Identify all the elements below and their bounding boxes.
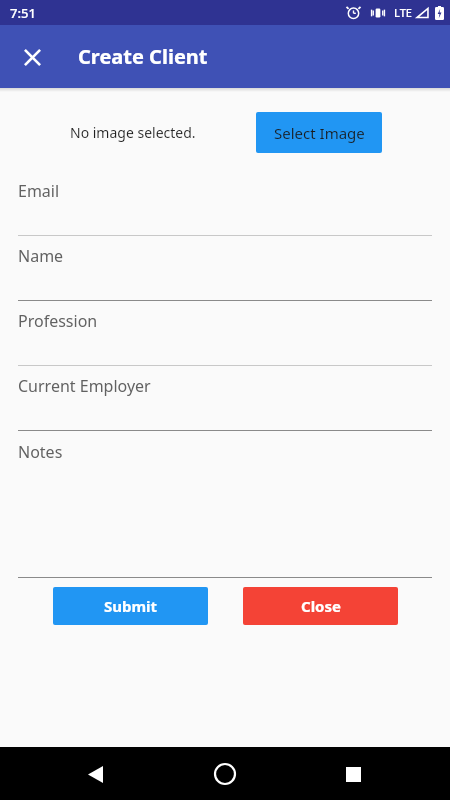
staticText: Name bbox=[18, 245, 64, 267]
staticText: Notes bbox=[18, 441, 63, 463]
button[interactable]: Back bbox=[71, 750, 119, 798]
button[interactable]: Current Employer bbox=[0, 366, 450, 431]
staticText: Select Image bbox=[274, 123, 365, 143]
button[interactable]: Close bbox=[243, 587, 398, 625]
staticText: LTE bbox=[394, 5, 412, 20]
staticText: Close bbox=[301, 596, 341, 616]
staticText: Profession bbox=[18, 310, 98, 332]
button[interactable]: Recent apps bbox=[329, 750, 377, 798]
staticText: 7:51 bbox=[10, 4, 36, 22]
staticText: No image selected. bbox=[70, 123, 196, 142]
button[interactable]: Select Image bbox=[256, 112, 382, 153]
button[interactable]: Submit bbox=[53, 587, 208, 625]
button[interactable]: Profession bbox=[0, 301, 450, 366]
button[interactable]: Close bbox=[12, 37, 52, 77]
button[interactable]: Email bbox=[0, 171, 450, 236]
staticText: Current Employer bbox=[18, 375, 151, 397]
staticText: Submit bbox=[104, 596, 158, 616]
button[interactable]: Name bbox=[0, 236, 450, 301]
button[interactable]: Notes bbox=[0, 431, 450, 578]
button[interactable]: Home bbox=[201, 750, 249, 798]
staticText: Create Client bbox=[78, 43, 208, 70]
staticText: Email bbox=[18, 180, 60, 202]
